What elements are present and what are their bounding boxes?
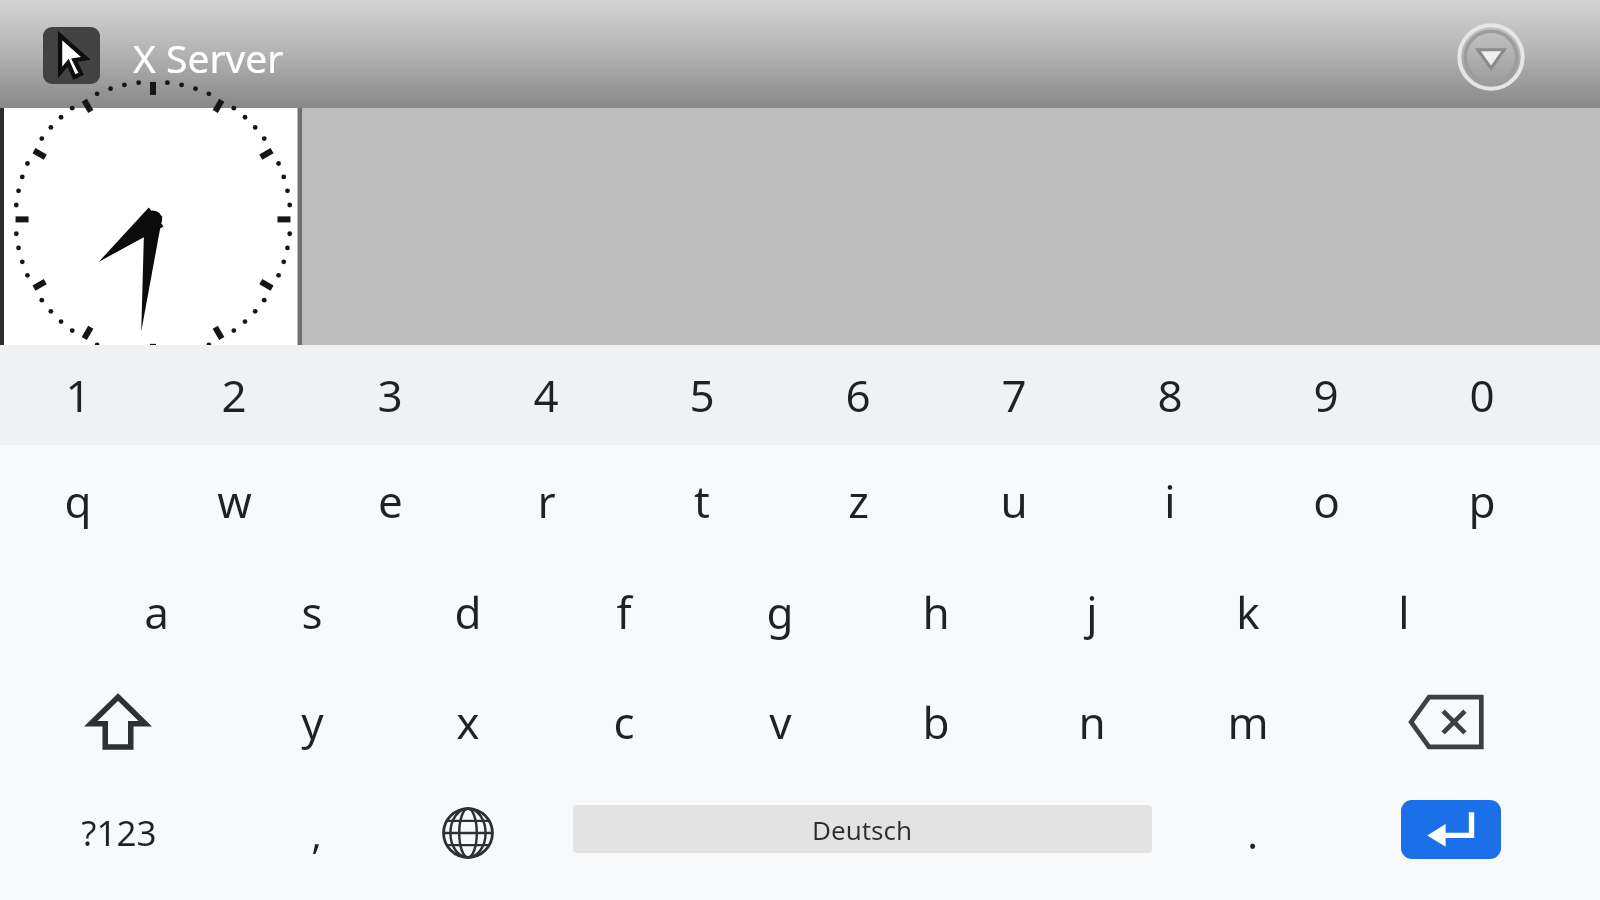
button[interactable]: 1 xyxy=(0,345,156,445)
staticText: e xyxy=(378,471,403,531)
staticText: 6 xyxy=(845,365,871,425)
staticText: Deutsch xyxy=(812,812,913,847)
staticText: l xyxy=(1398,582,1410,642)
button[interactable]: a xyxy=(78,557,234,667)
staticText: u xyxy=(1000,471,1028,531)
button[interactable]: c xyxy=(546,667,702,777)
button[interactable]: . xyxy=(1174,777,1330,889)
button[interactable]: X Server xyxy=(43,27,100,84)
button[interactable]: l xyxy=(1326,557,1482,667)
staticText: 1 xyxy=(65,365,91,425)
button[interactable]: Backspace xyxy=(1372,667,1522,777)
staticText: a xyxy=(144,582,169,642)
button[interactable]: w xyxy=(156,445,312,557)
button[interactable]: k xyxy=(1170,557,1326,667)
button[interactable]: Collapse panel xyxy=(1458,24,1524,90)
staticText: m xyxy=(1227,692,1269,752)
button[interactable]: p xyxy=(1404,445,1560,557)
staticText: s xyxy=(301,582,323,642)
staticText: w xyxy=(217,471,252,531)
staticText: 5 xyxy=(689,365,715,425)
button[interactable]: m xyxy=(1170,667,1326,777)
staticText: ?123 xyxy=(81,809,157,857)
button[interactable]: Change language xyxy=(390,777,546,889)
button[interactable]: x xyxy=(390,667,546,777)
button[interactable]: 6 xyxy=(780,345,936,445)
button[interactable]: y xyxy=(234,667,390,777)
button[interactable]: 2 xyxy=(156,345,312,445)
staticText: n xyxy=(1078,692,1106,752)
button[interactable]: 8 xyxy=(1092,345,1248,445)
button[interactable]: 0 xyxy=(1404,345,1560,445)
button[interactable]: 7 xyxy=(936,345,1092,445)
button[interactable]: Enter xyxy=(1401,800,1501,859)
staticText: i xyxy=(1164,471,1176,531)
staticText: v xyxy=(769,692,792,752)
staticText: , xyxy=(311,806,322,860)
staticText: y xyxy=(301,692,324,752)
staticText: 8 xyxy=(1157,365,1183,425)
button[interactable]: f xyxy=(546,557,702,667)
button[interactable]: t xyxy=(624,445,780,557)
staticText: h xyxy=(922,582,950,642)
button[interactable]: q xyxy=(0,445,156,557)
button[interactable]: v xyxy=(702,667,858,777)
staticText: k xyxy=(1236,582,1260,642)
staticText: b xyxy=(922,692,950,752)
button[interactable]: , xyxy=(238,777,394,889)
staticText: 0 xyxy=(1469,365,1495,425)
staticText: 3 xyxy=(377,365,403,425)
button[interactable]: u xyxy=(936,445,1092,557)
button[interactable]: i xyxy=(1092,445,1248,557)
staticText: q xyxy=(64,471,92,531)
button[interactable]: 5 xyxy=(624,345,780,445)
button[interactable]: r xyxy=(468,445,624,557)
staticText: 4 xyxy=(533,365,559,425)
button[interactable]: n xyxy=(1014,667,1170,777)
button[interactable]: h xyxy=(858,557,1014,667)
button[interactable]: g xyxy=(702,557,858,667)
button[interactable]: o xyxy=(1248,445,1404,557)
staticText: X Server xyxy=(133,31,284,84)
button[interactable]: 3 xyxy=(312,345,468,445)
staticText: o xyxy=(1313,471,1340,531)
button[interactable]: 9 xyxy=(1248,345,1404,445)
button[interactable]: Shift xyxy=(40,667,196,777)
button[interactable]: s xyxy=(234,557,390,667)
button[interactable]: z xyxy=(780,445,936,557)
staticText: 7 xyxy=(1001,365,1027,425)
staticText: 9 xyxy=(1313,365,1339,425)
staticText: r xyxy=(537,471,556,531)
button[interactable]: j xyxy=(1014,557,1170,667)
staticText: x xyxy=(456,692,480,752)
button[interactable]: ?123 xyxy=(40,777,198,889)
staticText: p xyxy=(1468,471,1496,531)
staticText: d xyxy=(454,582,482,642)
staticText: . xyxy=(1247,806,1258,860)
button[interactable]: Deutsch xyxy=(573,805,1152,853)
button[interactable]: b xyxy=(858,667,1014,777)
button[interactable]: d xyxy=(390,557,546,667)
button[interactable]: e xyxy=(312,445,468,557)
button[interactable]: 4 xyxy=(468,345,624,445)
button[interactable] xyxy=(0,108,303,345)
staticText: g xyxy=(766,582,794,642)
staticText: f xyxy=(616,582,632,642)
staticText: 2 xyxy=(221,365,247,425)
staticText: c xyxy=(613,692,635,752)
staticText: j xyxy=(1086,582,1098,642)
staticText: z xyxy=(848,471,869,531)
staticText: t xyxy=(694,471,710,531)
